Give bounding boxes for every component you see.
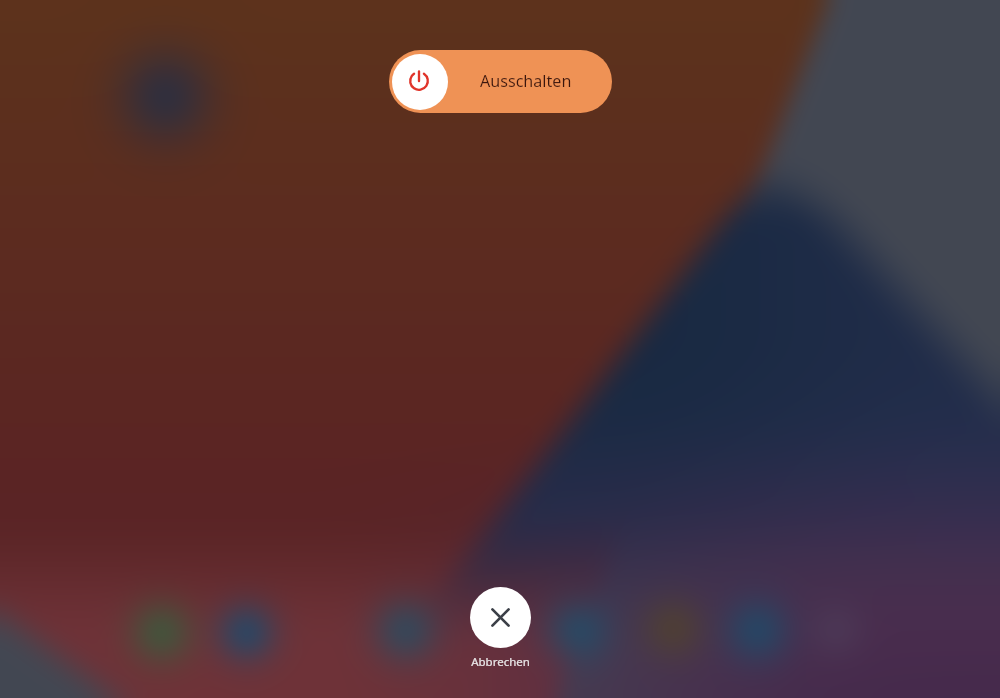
other: Abbrechen (470, 587, 531, 648)
button[interactable]: Abbrechen (455, 587, 545, 670)
staticText: Ausschalten (480, 70, 572, 92)
button[interactable]: Ausschalten (389, 50, 612, 113)
staticText: Abbrechen (471, 654, 530, 670)
